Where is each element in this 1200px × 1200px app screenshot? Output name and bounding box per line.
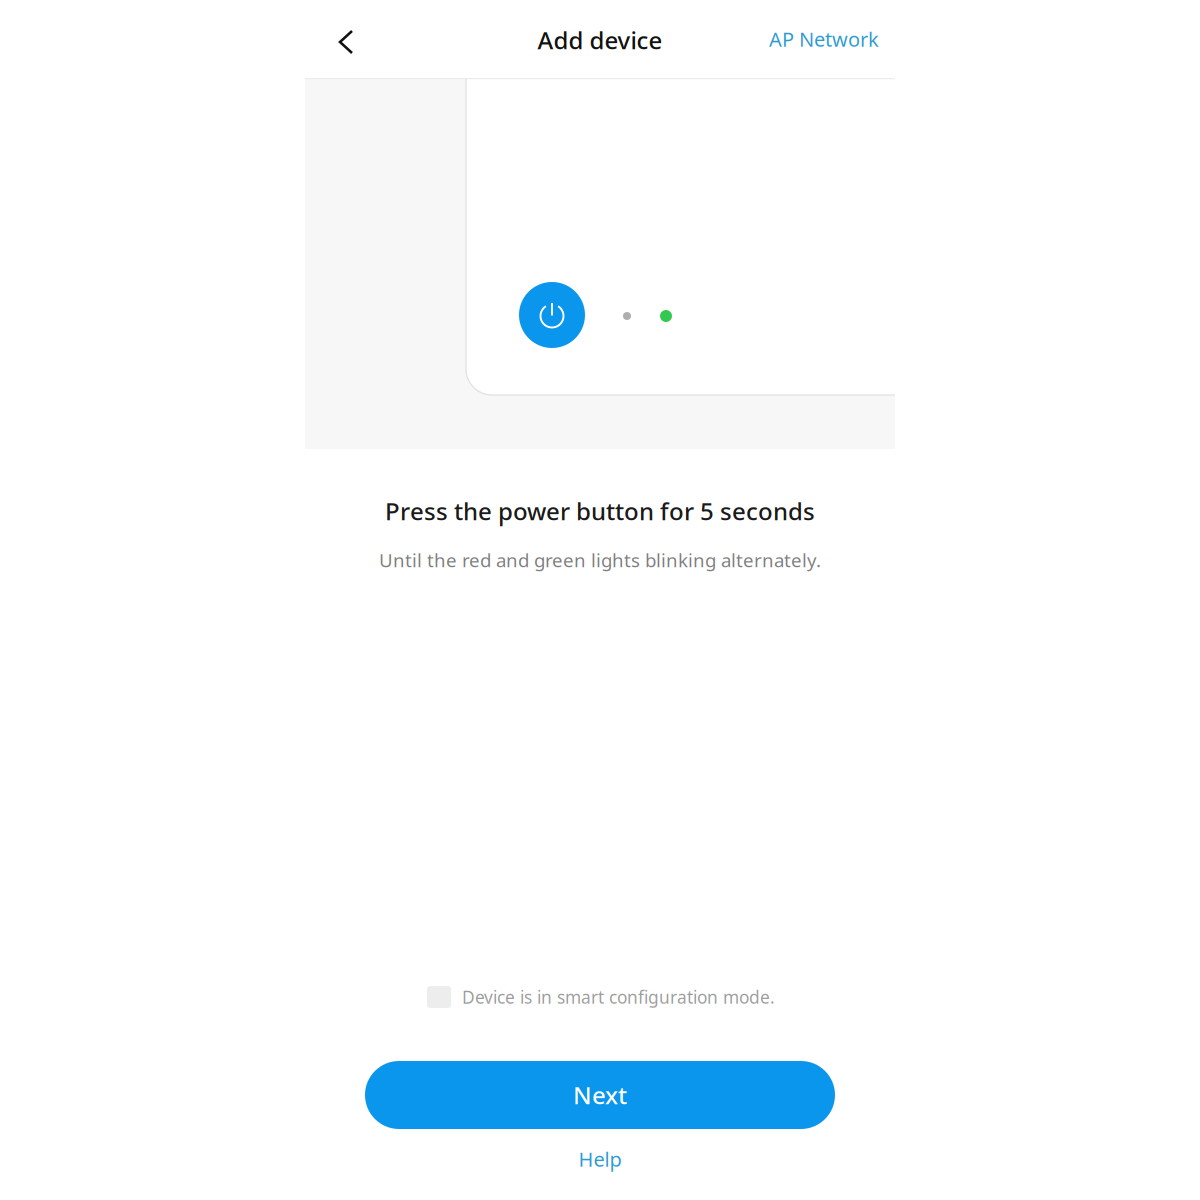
staticText: Add device — [537, 24, 662, 56]
staticText: Help — [578, 1146, 621, 1172]
button[interactable]: Next — [365, 1061, 835, 1129]
button[interactable]: AP Network — [747, 12, 879, 66]
staticText: Press the power button for 5 seconds — [385, 495, 815, 527]
staticText: AP Network — [769, 26, 879, 52]
button[interactable]: Back — [319, 15, 373, 69]
staticText: Device is in smart configuration mode. — [462, 985, 775, 1008]
button[interactable]: Device is in smart configuration mode. — [306, 982, 896, 1012]
staticText: Until the red and green lights blinking … — [379, 548, 821, 572]
button[interactable]: Help — [530, 1142, 670, 1176]
staticText: Next — [573, 1079, 627, 1111]
